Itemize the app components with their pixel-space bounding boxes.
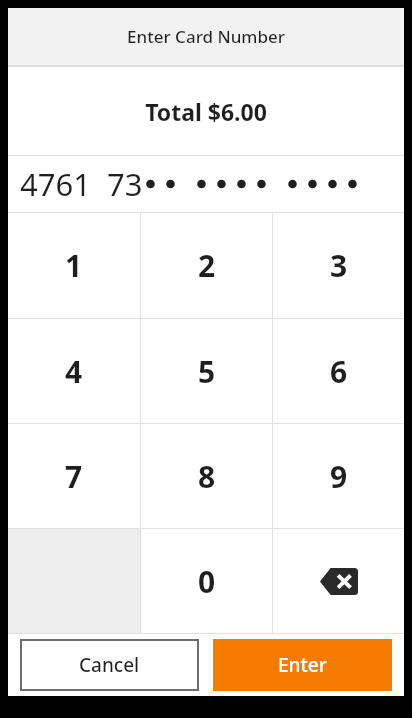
button[interactable]: 2 (141, 213, 272, 318)
staticText: Total $6.00 (145, 96, 267, 127)
staticText: 4761 (20, 163, 91, 205)
button[interactable]: 0 (141, 529, 272, 633)
button[interactable]: 1 (8, 213, 140, 318)
staticText: Enter (278, 652, 327, 678)
staticText: Cancel (79, 652, 140, 678)
staticText: 6 (330, 351, 348, 392)
staticText: 8 (198, 456, 216, 497)
staticText: 5 (198, 351, 216, 392)
button[interactable]: 9 (273, 424, 404, 528)
staticText: 73 (107, 163, 143, 205)
button[interactable]: Cancel (20, 639, 199, 691)
button[interactable]: 4 (8, 319, 140, 423)
staticText: 4 (65, 351, 83, 392)
staticText: 9 (330, 456, 348, 497)
button[interactable]: 8 (141, 424, 272, 528)
button[interactable]: Backspace (273, 529, 404, 633)
staticText: Enter Card Number (127, 25, 285, 48)
button[interactable]: Enter (213, 639, 392, 691)
staticText: 7 (65, 456, 83, 497)
staticText: 0 (198, 561, 216, 602)
button[interactable]: 6 (273, 319, 404, 423)
staticText: 1 (65, 245, 83, 286)
staticText: 2 (198, 245, 216, 286)
button[interactable]: 7 (8, 424, 140, 528)
staticText: 3 (330, 245, 348, 286)
button[interactable]: 5 (141, 319, 272, 423)
button[interactable]: 3 (273, 213, 404, 318)
